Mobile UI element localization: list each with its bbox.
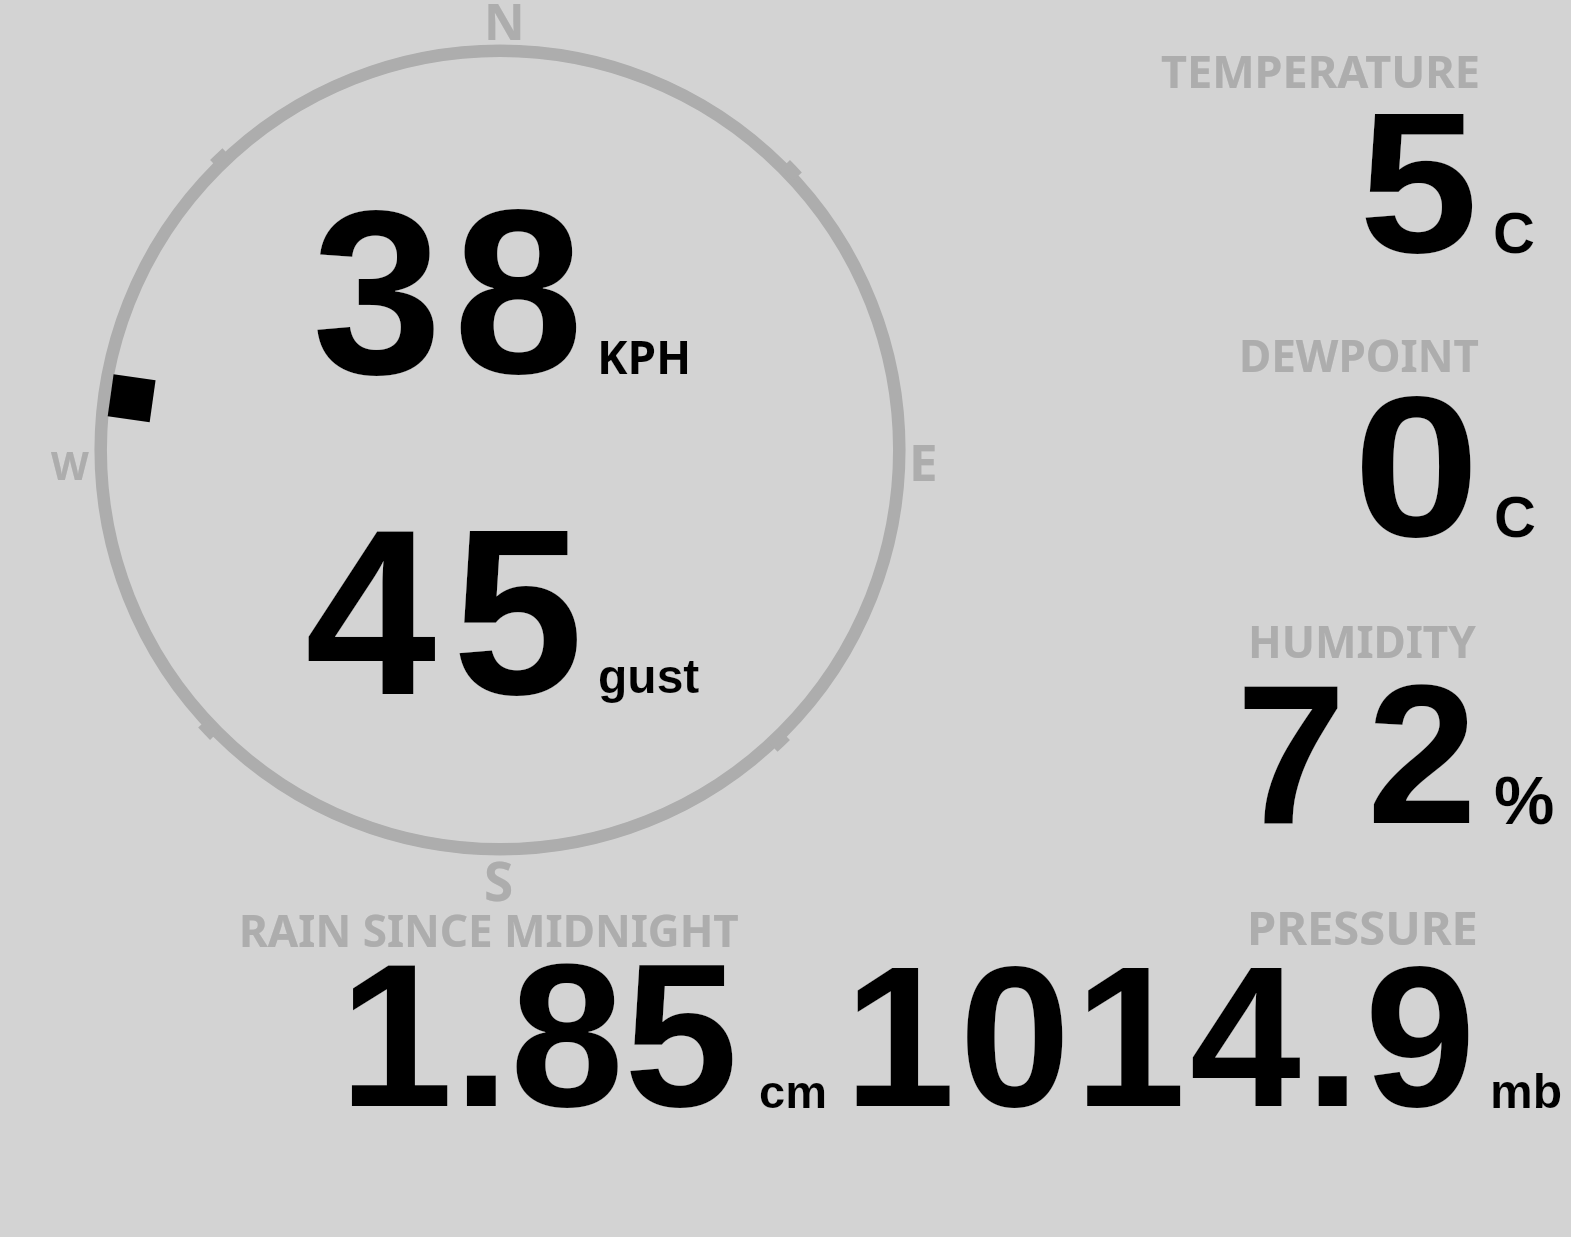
button[interactable]: Dewpoint 0 degrees Celsius	[1100, 325, 1571, 575]
staticText: PRESSURE	[1247, 895, 1478, 959]
button[interactable]: Pressure 1014.9 millibars	[850, 900, 1571, 1130]
staticText: cm	[759, 1065, 827, 1118]
button[interactable]: Humidity 72 percent	[1100, 610, 1571, 860]
staticText: 5	[1359, 71, 1479, 294]
staticText: N	[484, 0, 525, 55]
staticText: gust	[598, 650, 700, 704]
staticText: 1014.9	[844, 925, 1480, 1148]
button[interactable]: Wind 38 KPH, gusting 45, direction west …	[60, 40, 940, 870]
staticText: 72	[1236, 644, 1498, 865]
staticText: S	[484, 844, 514, 916]
staticText: DEWPOINT	[1239, 325, 1479, 385]
staticText: %	[1494, 762, 1555, 838]
staticText: TEMPERATURE	[1161, 40, 1480, 101]
button[interactable]: Rain since midnight 1.85 centimetres	[200, 900, 850, 1130]
staticText: E	[909, 426, 938, 495]
staticText: C	[1494, 484, 1536, 549]
staticText: 0	[1353, 355, 1481, 578]
staticText: mb	[1490, 1065, 1562, 1119]
staticText: RAIN SINCE MIDNIGHT	[239, 900, 739, 960]
staticText: KPH	[597, 325, 692, 388]
button[interactable]: Temperature 5 degrees Celsius	[1100, 40, 1571, 290]
staticText: W	[51, 438, 89, 491]
staticText: 45	[305, 480, 600, 744]
staticText: 1.85	[339, 920, 738, 1149]
staticText: 38	[312, 161, 595, 422]
staticText: HUMIDITY	[1248, 611, 1476, 671]
staticText: C	[1493, 200, 1535, 265]
